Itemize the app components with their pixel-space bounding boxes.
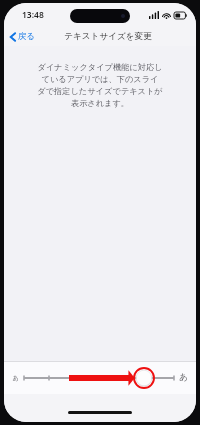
staticText: テキストサイズを変更: [64, 31, 152, 42]
staticText: あ: [12, 374, 19, 382]
staticText: ダイナミックタイプ機能に対応し ているアプリでは、下のスライ ダで指定したサイズ…: [14, 62, 186, 109]
staticText: あ: [179, 372, 188, 383]
staticText: 戻る: [18, 31, 36, 42]
button[interactable]: Text size slider: [24, 365, 174, 391]
staticText: 13:48: [22, 9, 44, 21]
button[interactable]: 戻る: [4, 29, 40, 44]
